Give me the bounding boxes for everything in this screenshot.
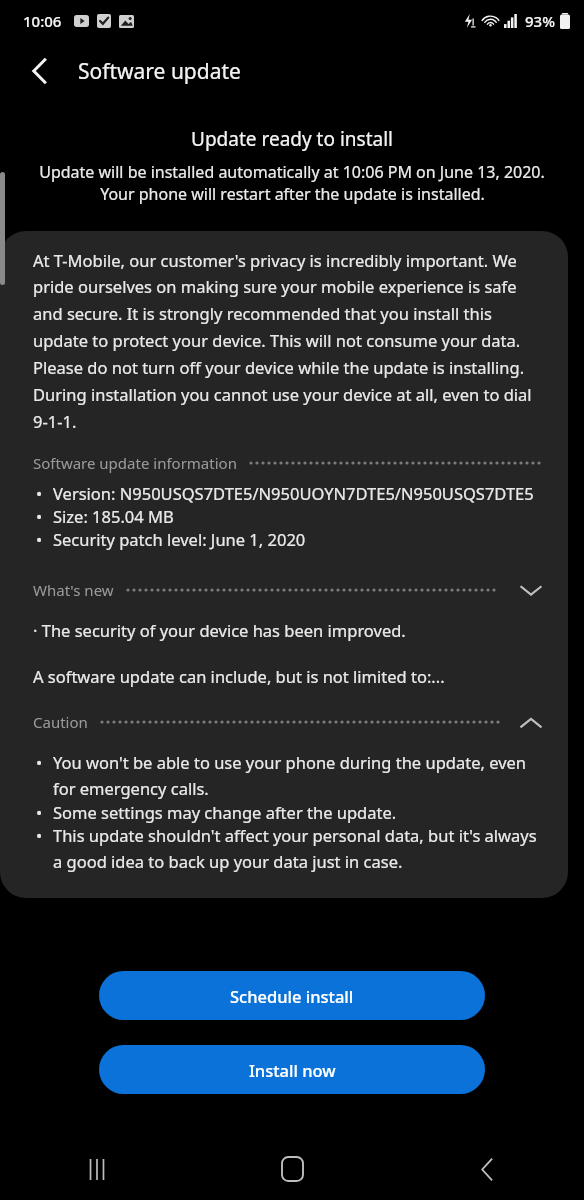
staticText: • (36, 824, 43, 846)
button[interactable]: Caution (33, 705, 548, 739)
staticText: Version: N950USQS7DTE5/N950UOYN7DTE5/N95… (53, 482, 534, 504)
staticText: Your phone will restart after the update… (100, 183, 485, 205)
staticText: At T-Mobile, our customer's privacy is i… (33, 249, 548, 433)
staticText: This update shouldn't affect your person… (53, 824, 548, 873)
staticText: Caution (33, 712, 88, 732)
button[interactable]: Recents (66, 1138, 128, 1200)
staticText: • (36, 751, 43, 773)
staticText: Size: 185.04 MB (53, 505, 174, 527)
staticText: Schedule install (230, 985, 354, 1007)
button[interactable]: Expand (514, 573, 548, 607)
button[interactable]: Software update information (33, 453, 548, 473)
staticText: • (36, 801, 43, 823)
staticText: Some settings may change after the updat… (53, 801, 397, 823)
staticText: Security patch level: June 1, 2020 (53, 528, 306, 550)
staticText: • (36, 505, 43, 527)
staticText: Update ready to install (191, 126, 393, 152)
staticText: You won't be able to use your phone duri… (53, 751, 548, 800)
staticText: 93% (525, 11, 555, 31)
staticText: 10:06 (23, 11, 62, 31)
button[interactable]: What's new (33, 573, 548, 607)
button[interactable]: Back (456, 1138, 518, 1200)
staticText: · The security of your device has been i… (33, 619, 406, 641)
staticText: Software update (78, 57, 241, 86)
staticText: Update will be installed automatically a… (39, 161, 545, 183)
staticText: • (36, 482, 43, 504)
button[interactable]: Home (261, 1138, 323, 1200)
staticText: Software update information (33, 453, 237, 473)
staticText: A software update can include, but is no… (33, 665, 445, 687)
button[interactable]: Back (14, 46, 64, 96)
button[interactable]: Schedule install (99, 971, 485, 1020)
button[interactable]: Install now (99, 1045, 485, 1094)
staticText: • (36, 528, 43, 550)
staticText: Install now (249, 1059, 336, 1081)
staticText: What's new (33, 580, 114, 600)
button[interactable]: Collapse (514, 705, 548, 739)
